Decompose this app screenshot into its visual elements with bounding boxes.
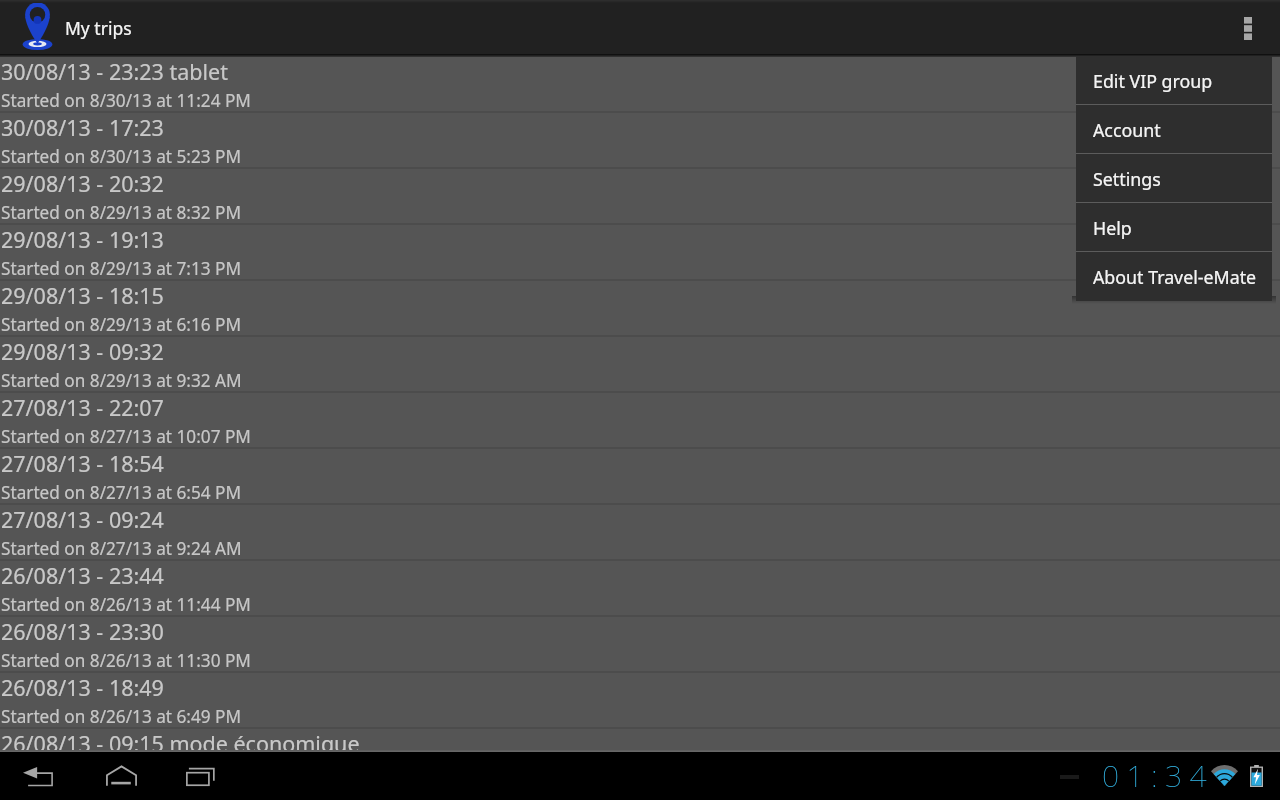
button[interactable]: 27/08/13 - 18:54	[0, 449, 1280, 505]
staticText: Started on 8/26/13 at 11:44 PM	[1, 593, 251, 616]
staticText: Started on 8/29/13 at 9:32 AM	[1, 369, 242, 392]
button[interactable]: 29/08/13 - 20:32	[0, 169, 1280, 225]
button[interactable]: Help	[1076, 203, 1272, 252]
button[interactable]: 29/08/13 - 09:32	[0, 337, 1280, 393]
staticText: 27/08/13 - 18:54	[1, 449, 164, 478]
staticText: 26/08/13 - 09:15 mode économique	[1, 729, 360, 752]
staticText: 26/08/13 - 23:30	[1, 617, 164, 646]
staticText: About Travel-eMate	[1093, 265, 1257, 289]
staticText: Account	[1093, 118, 1161, 142]
staticText: 26/08/13 - 23:44	[1, 561, 164, 590]
staticText: Started on 8/26/13 at 6:49 PM	[1, 705, 242, 728]
staticText: 30/08/13 - 17:23	[1, 113, 164, 142]
staticText: Started on 8/29/13 at 8:32 PM	[1, 201, 242, 224]
button[interactable]: Recent apps	[168, 752, 232, 800]
staticText: 29/08/13 - 09:32	[1, 337, 164, 366]
button[interactable]: 27/08/13 - 09:24	[0, 505, 1280, 561]
button[interactable]: 30/08/13 - 17:23	[0, 113, 1280, 169]
button[interactable]: Back	[6, 752, 70, 800]
staticText: 29/08/13 - 20:32	[1, 169, 164, 198]
button[interactable]: 27/08/13 - 22:07	[0, 393, 1280, 449]
staticText: Help	[1093, 216, 1132, 240]
button[interactable]: 26/08/13 - 18:49	[0, 673, 1280, 729]
staticText: Started on 8/26/13 at 11:30 PM	[1, 649, 251, 672]
staticText: Started on 8/30/13 at 11:24 PM	[1, 89, 251, 112]
button[interactable]: 30/08/13 - 23:23 tablet	[0, 57, 1280, 113]
staticText: 01:34	[1102, 755, 1214, 796]
button[interactable]: 26/08/13 - 09:15 mode économique	[0, 729, 1280, 752]
button[interactable]: Account	[1076, 105, 1272, 154]
staticText: Started on 8/30/13 at 5:23 PM	[1, 145, 242, 168]
button[interactable]: 29/08/13 - 18:15	[0, 281, 1280, 337]
staticText: 30/08/13 - 23:23 tablet	[1, 57, 228, 86]
button[interactable]: 29/08/13 - 19:13	[0, 225, 1280, 281]
staticText: 29/08/13 - 18:15	[1, 281, 164, 310]
button[interactable]: About Travel-eMate	[1076, 252, 1272, 301]
staticText: Started on 8/27/13 at 10:07 PM	[1, 425, 251, 448]
button[interactable]: Settings	[1076, 154, 1272, 203]
button[interactable]: 26/08/13 - 23:44	[0, 561, 1280, 617]
staticText: Started on 8/27/13 at 9:24 AM	[1, 537, 242, 560]
staticText: Started on 8/27/13 at 6:54 PM	[1, 481, 242, 504]
button[interactable]: Home	[89, 752, 153, 800]
button[interactable]: My trips	[0, 0, 150, 54]
button[interactable]: More options	[1221, 0, 1275, 54]
staticText: Started on 8/29/13 at 7:13 PM	[1, 257, 242, 280]
staticText: My trips	[65, 16, 132, 40]
staticText: 27/08/13 - 22:07	[1, 393, 164, 422]
staticText: 27/08/13 - 09:24	[1, 505, 164, 534]
button[interactable]: Edit VIP group	[1076, 56, 1272, 105]
button[interactable]: 26/08/13 - 23:30	[0, 617, 1280, 673]
staticText: 29/08/13 - 19:13	[1, 225, 164, 254]
staticText: 26/08/13 - 18:49	[1, 673, 164, 702]
staticText: Settings	[1093, 167, 1161, 191]
staticText: Started on 8/29/13 at 6:16 PM	[1, 313, 242, 336]
staticText: Started on 8/26/13 at 9:15 AM	[1, 761, 242, 784]
staticText: Edit VIP group	[1093, 69, 1213, 93]
